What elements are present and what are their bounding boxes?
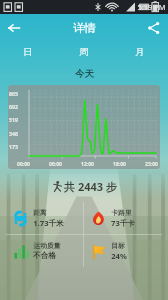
staticText: 00:00: [17, 161, 30, 168]
staticText: 今天: [75, 68, 94, 80]
button[interactable]: 目标: [84, 235, 162, 267]
staticText: 346: [9, 130, 18, 137]
button[interactable]: Share: [140, 14, 168, 42]
staticText: 目标: [111, 241, 125, 250]
staticText: 519: [9, 116, 18, 123]
staticText: 18:00: [113, 161, 126, 168]
button[interactable]: 月: [112, 42, 168, 62]
staticText: 06:00: [49, 161, 62, 168]
staticText: 详情: [73, 21, 96, 35]
staticText: 共 2443 步: [64, 179, 117, 194]
staticText: 5:19 PM: [137, 2, 166, 12]
staticText: 865: [9, 90, 18, 97]
staticText: 卡路里: [111, 208, 132, 217]
staticText: 23:00: [145, 161, 158, 168]
staticText: 692: [9, 103, 18, 110]
button[interactable]: 运动质量: [6, 235, 83, 267]
staticText: 距离: [33, 208, 47, 217]
button[interactable]: Back: [0, 14, 28, 42]
button[interactable]: 865: [8, 85, 160, 169]
button[interactable]: 卡路里: [84, 202, 162, 234]
staticText: 73千卡: [111, 218, 135, 228]
button[interactable]: 日: [0, 42, 56, 62]
staticText: 周: [79, 46, 89, 58]
staticText: 月: [135, 46, 145, 58]
staticText: 不合格: [33, 251, 56, 261]
staticText: 24%: [111, 251, 127, 261]
staticText: 1.73千米: [33, 218, 64, 228]
staticText: 运动质量: [33, 241, 61, 250]
staticText: 173: [9, 143, 18, 150]
staticText: 日: [23, 46, 33, 58]
staticText: 12:00: [81, 161, 94, 168]
button[interactable]: 周: [56, 42, 112, 62]
button[interactable]: 距离: [6, 202, 83, 234]
